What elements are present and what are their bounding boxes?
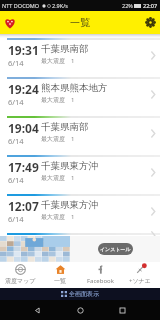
staticText: 2.9K/s xyxy=(52,2,68,9)
staticText: 全画面表示 xyxy=(69,290,99,298)
staticText: 震度マップ xyxy=(5,277,36,285)
staticText: 6/14 xyxy=(8,97,24,107)
button[interactable]: Back xyxy=(33,306,42,315)
staticText: 千葉県東方沖 xyxy=(41,160,98,172)
staticText: 12:07 xyxy=(8,198,39,214)
staticText: NTT DOCOMO xyxy=(2,2,40,9)
staticText: 6/14 xyxy=(8,58,24,68)
button[interactable]: インストール xyxy=(98,243,133,255)
staticText: 千葉県南部 xyxy=(41,43,89,55)
staticText: 6/14 xyxy=(8,175,24,185)
button[interactable]: +ソナエ xyxy=(120,262,160,288)
staticText: 22:07 xyxy=(143,2,158,9)
staticText: 6/14 xyxy=(8,136,24,146)
button[interactable]: 19:24 xyxy=(0,77,160,116)
button[interactable]: 17:49 xyxy=(0,155,160,194)
button[interactable]: Favorites xyxy=(4,17,16,29)
button[interactable]: 19:04 xyxy=(0,116,160,155)
staticText: 最大震度 xyxy=(41,174,65,182)
staticText: 6/14 xyxy=(8,214,24,224)
staticText: 17:49 xyxy=(8,159,39,175)
staticText: 22% xyxy=(122,2,133,9)
staticText: 1 xyxy=(71,135,75,143)
button[interactable]: 震度マップ xyxy=(0,262,40,288)
staticText: 1 xyxy=(71,96,75,104)
button[interactable]: 11:02 xyxy=(0,233,160,236)
staticText: 1 xyxy=(71,57,75,65)
button[interactable]: Settings xyxy=(145,17,156,28)
staticText: 19:24 xyxy=(8,81,39,97)
staticText: 一覧 xyxy=(54,277,66,285)
button[interactable]: Recents xyxy=(118,306,127,315)
button[interactable]: Home xyxy=(76,306,85,315)
staticText: 最大震度 xyxy=(41,57,65,65)
staticText: 19:04 xyxy=(8,120,39,136)
button[interactable]: 19:31 xyxy=(0,38,160,77)
button[interactable]: 愛メモ！・ストー xyxy=(0,236,160,262)
staticText: インストール xyxy=(100,246,131,252)
staticText: 千葉県南部 xyxy=(41,121,89,133)
button[interactable]: 一覧 xyxy=(40,262,80,288)
staticText: 一覧 xyxy=(70,16,90,29)
staticText: 千葉県東方沖 xyxy=(41,199,98,211)
staticText: 最大震度 xyxy=(41,96,65,104)
staticText: Facebook xyxy=(87,277,114,285)
staticText: 熊本県熊本地方 xyxy=(41,82,108,94)
staticText: +ソナエ xyxy=(129,277,151,285)
staticText: 最大震度 xyxy=(41,135,65,143)
staticText: 1 xyxy=(71,174,75,182)
staticText: 19:31 xyxy=(8,42,39,58)
button[interactable]: 12:07 xyxy=(0,194,160,233)
staticText: 最大震度 xyxy=(41,213,65,221)
button[interactable]: Facebook xyxy=(80,262,120,288)
button[interactable]: 全画面表示 xyxy=(0,288,160,300)
staticText: 1 xyxy=(71,213,75,221)
